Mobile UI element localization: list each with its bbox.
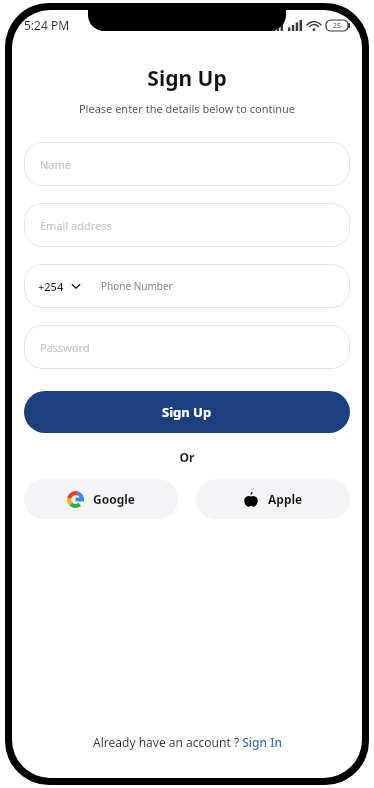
staticText: Google <box>93 491 136 507</box>
button[interactable]: Password <box>24 325 350 369</box>
staticText: Password <box>40 340 90 355</box>
button[interactable]: Sign Up <box>24 391 350 433</box>
staticText: Or <box>24 449 350 465</box>
button[interactable]: Apple <box>196 479 350 519</box>
button[interactable]: Google <box>24 479 178 519</box>
staticText: +254 <box>38 279 64 294</box>
staticText: Phone Number <box>101 279 173 293</box>
staticText: Email address <box>40 218 112 233</box>
staticText: Sign Up <box>162 403 212 421</box>
staticText: 5:24 PM <box>24 17 70 33</box>
button[interactable]: Already have an account ? Sign In <box>12 728 362 756</box>
button[interactable]: Name <box>24 142 350 186</box>
staticText: Apple <box>268 491 303 507</box>
button[interactable]: Email address <box>24 203 350 247</box>
button[interactable]: +254 <box>24 264 350 308</box>
other: Select country code <box>69 279 83 293</box>
staticText: Already have an account ? Sign In <box>93 734 282 750</box>
staticText: Name <box>40 157 72 172</box>
staticText: Please enter the details below to contin… <box>12 101 362 116</box>
staticText: Sign Up <box>12 64 362 93</box>
staticText: 25 <box>333 21 342 31</box>
